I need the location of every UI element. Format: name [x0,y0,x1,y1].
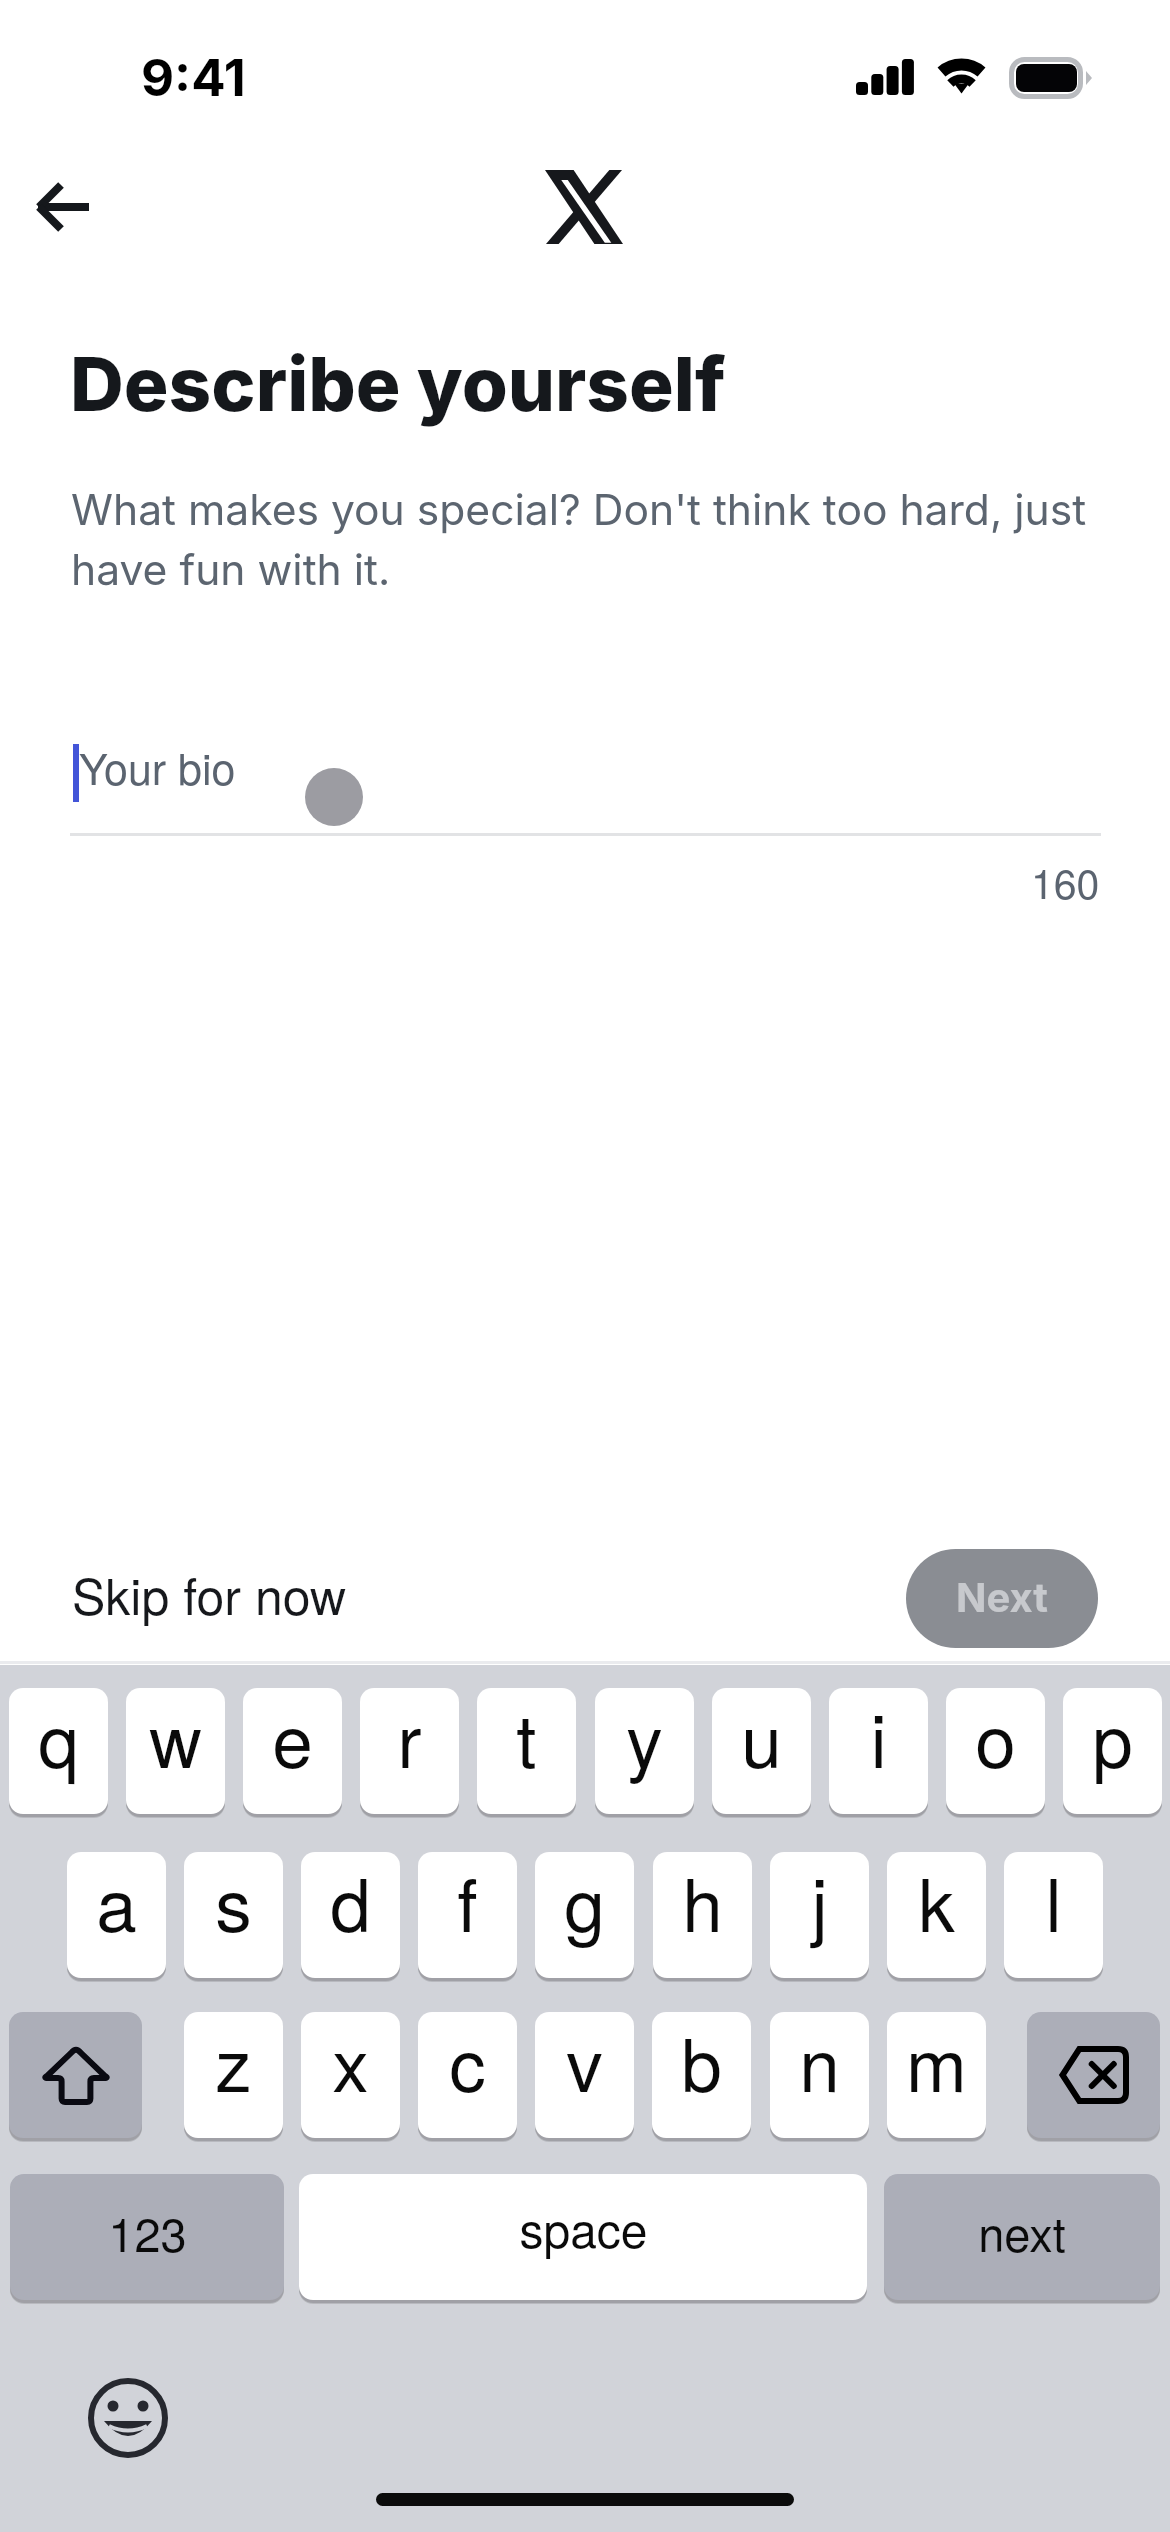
button[interactable]: u [712,1688,811,1814]
staticText: x [332,2012,369,2113]
button[interactable]: x [301,2012,400,2138]
button[interactable]: e [243,1688,342,1814]
staticText: n [799,2012,840,2113]
button[interactable]: g [535,1852,634,1978]
staticText: m [906,2012,967,2113]
button[interactable]: l [1004,1852,1103,1978]
staticText: w [149,1688,202,1789]
button[interactable]: Next [906,1549,1098,1648]
staticText: r [397,1688,422,1789]
button[interactable]: Back [18,163,106,251]
button[interactable]: y [595,1688,694,1814]
button[interactable]: p [1063,1688,1162,1814]
staticText: Describe yourself [70,339,726,429]
button[interactable]: space [299,2174,867,2300]
button[interactable]: Your bio [70,700,1100,832]
staticText: c [449,2012,486,2113]
staticText: Next [956,1573,1048,1621]
button[interactable]: d [301,1852,400,1978]
staticText: 160 [1031,852,1100,911]
staticText: t [516,1688,537,1789]
staticText: 123 [108,2198,187,2265]
button[interactable]: o [946,1688,1045,1814]
button[interactable]: r [360,1688,459,1814]
button[interactable]: c [418,2012,517,2138]
button[interactable]: h [653,1852,752,1978]
staticText: p [1092,1688,1133,1789]
button[interactable]: 123 [10,2174,284,2300]
button[interactable]: Skip for now [50,1542,369,1646]
button[interactable]: f [418,1852,517,1978]
staticText: o [975,1688,1016,1789]
staticText: space [519,2193,648,2262]
staticText: e [272,1688,313,1789]
staticText: g [564,1852,605,1953]
button[interactable]: next [884,2174,1160,2300]
staticText: v [566,2012,603,2113]
button[interactable]: k [887,1852,986,1978]
staticText: Your bio [79,736,236,798]
staticText: f [457,1852,478,1953]
staticText: a [96,1852,137,1953]
staticText: s [215,1852,252,1953]
button[interactable]: t [477,1688,576,1814]
staticText: b [681,2012,722,2113]
staticText: i [870,1688,887,1789]
staticText: 9:41 [141,47,246,109]
button[interactable]: Backspace [1027,2012,1160,2138]
button[interactable]: w [126,1688,225,1814]
staticText: q [38,1688,79,1789]
button[interactable]: z [184,2012,283,2138]
staticText: y [626,1688,663,1789]
button[interactable]: s [184,1852,283,1978]
staticText: d [330,1852,371,1953]
staticText: h [682,1852,723,1953]
button[interactable]: m [887,2012,986,2138]
button[interactable]: v [535,2012,634,2138]
button[interactable]: i [829,1688,928,1814]
staticText: What makes you special? Don't think too … [71,484,1131,595]
button[interactable]: Emoji keyboard [87,2377,169,2459]
staticText: z [215,2012,252,2113]
button[interactable]: q [9,1688,108,1814]
staticText: j [811,1852,828,1953]
button[interactable]: n [770,2012,869,2138]
staticText: l [1045,1852,1062,1953]
staticText: next [978,2198,1066,2265]
staticText: k [918,1852,955,1953]
staticText: u [741,1688,782,1789]
button[interactable]: Shift [9,2012,142,2138]
button[interactable]: j [770,1852,869,1978]
button[interactable]: a [67,1852,166,1978]
button[interactable]: b [652,2012,751,2138]
staticText: Skip for now [72,1558,347,1630]
